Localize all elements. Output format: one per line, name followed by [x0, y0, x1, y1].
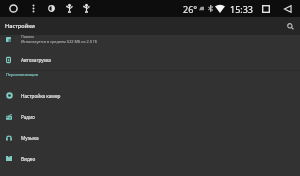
staticText: Используется в среднем 622 МБ из 2.0 ГБ [21, 39, 98, 44]
button[interactable]: More options [26, 0, 40, 17]
button[interactable]: USB device [79, 0, 93, 17]
button[interactable]: Brightness [44, 0, 58, 17]
button[interactable]: Музыка [0, 127, 300, 148]
staticText: 15:33 [230, 3, 254, 15]
staticText: Радио [21, 114, 35, 120]
button[interactable]: Видео [0, 148, 300, 169]
button[interactable]: Search [284, 20, 296, 32]
staticText: Настройка камер [21, 93, 61, 99]
button[interactable]: Настройка камер [0, 85, 300, 106]
staticText: 26° [183, 3, 198, 15]
staticText: Персонализация [6, 72, 38, 77]
staticText: Память [21, 34, 35, 39]
button[interactable]: Память [0, 35, 300, 49]
button[interactable]: Recents [259, 0, 273, 17]
button[interactable]: Радио [0, 106, 300, 127]
staticText: Видео [21, 156, 36, 162]
staticText: Музыка [21, 135, 39, 141]
button[interactable]: Back [281, 0, 295, 17]
staticText: Настройки [5, 22, 35, 30]
button[interactable]: USB [62, 0, 76, 17]
button[interactable]: Record [6, 0, 20, 17]
button[interactable]: Автозагрузка [0, 49, 300, 70]
staticText: Автозагрузка [21, 57, 51, 63]
